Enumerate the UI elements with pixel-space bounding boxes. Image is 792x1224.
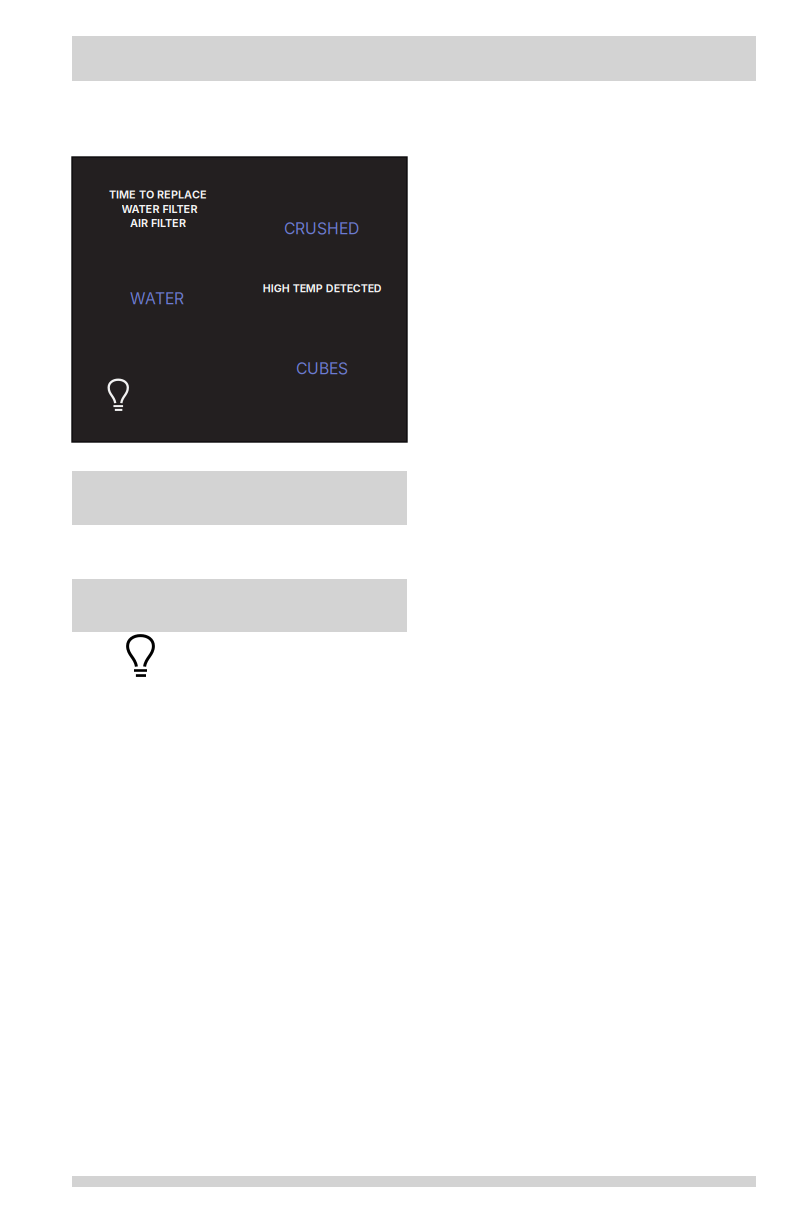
button[interactable]: CUBES bbox=[296, 359, 348, 378]
staticText: TIME TO REPLACE bbox=[109, 188, 207, 201]
staticText: CUBES bbox=[296, 359, 348, 378]
staticText: AIR FILTER bbox=[130, 216, 186, 230]
staticText: CRUSHED bbox=[284, 219, 359, 238]
button[interactable]: CRUSHED bbox=[284, 219, 359, 238]
button[interactable]: Light bbox=[126, 634, 155, 677]
button[interactable]: Dispenser light bbox=[107, 378, 129, 411]
staticText: WATER bbox=[130, 289, 184, 308]
staticText: WATER FILTER bbox=[121, 202, 197, 216]
staticText: HIGH TEMP DETECTED bbox=[263, 282, 382, 295]
button[interactable]: WATER bbox=[130, 289, 184, 308]
